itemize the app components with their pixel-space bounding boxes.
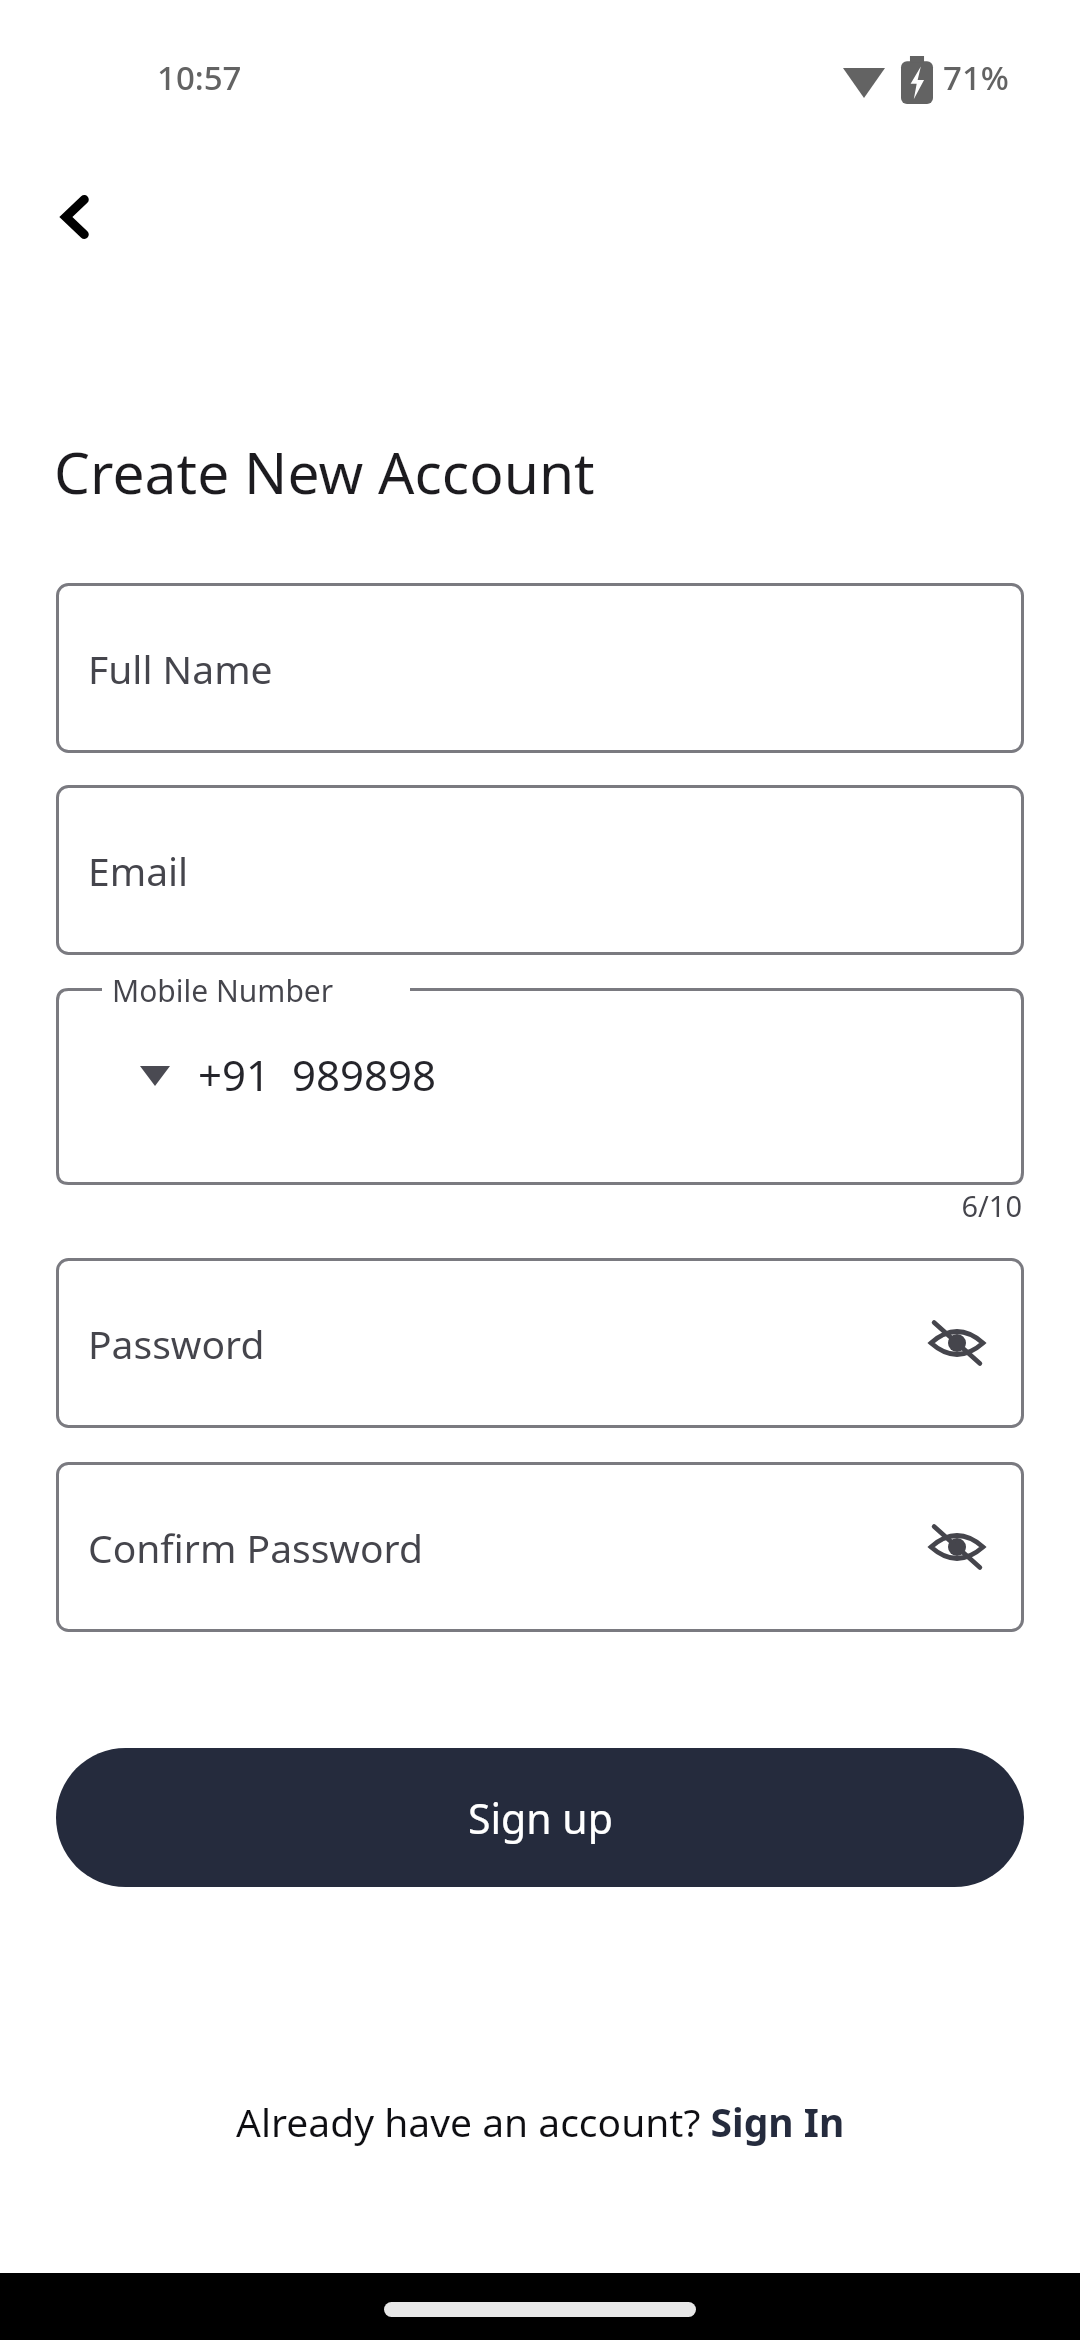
staticText: Full Name	[88, 642, 273, 695]
staticText: Password	[88, 1317, 265, 1370]
staticText: +91 989898	[198, 1046, 437, 1103]
button[interactable]: Password	[56, 1258, 1024, 1428]
button[interactable]: Email	[56, 785, 1024, 955]
button[interactable]: Mobile Number	[56, 988, 1024, 1185]
staticText: Create New Account	[54, 433, 595, 511]
button[interactable]: Show password	[914, 1300, 1000, 1386]
staticText: Sign up	[468, 1790, 613, 1846]
button[interactable]: Full Name	[56, 583, 1024, 753]
staticText: Confirm Password	[88, 1521, 423, 1574]
staticText: Mobile Number	[112, 970, 334, 1011]
staticText: 6/10	[0, 1186, 1022, 1225]
button[interactable]: Confirm Password	[56, 1462, 1024, 1632]
button[interactable]: Show password	[914, 1504, 1000, 1590]
staticText: Already have an account? Sign In	[236, 2095, 845, 2148]
button[interactable]: Sign up	[56, 1748, 1024, 1887]
staticText: 71%	[943, 55, 1009, 100]
button[interactable]: Already have an account? Sign In	[0, 2078, 1080, 2164]
button[interactable]: Back	[26, 167, 126, 267]
staticText: 10:57	[157, 55, 242, 100]
staticText: Email	[88, 844, 189, 897]
